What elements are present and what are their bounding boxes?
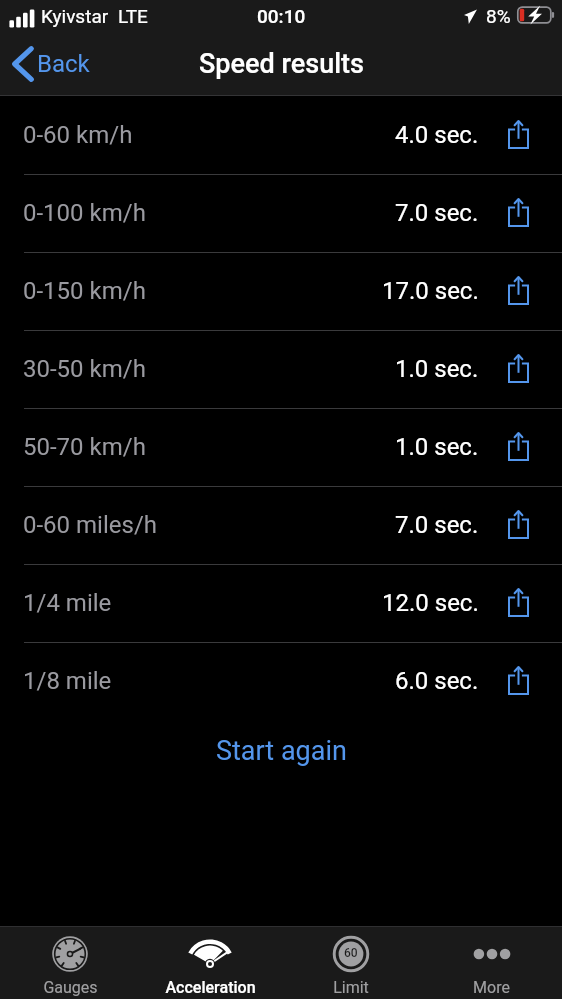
- staticText: 17.0 sec.: [382, 277, 479, 305]
- button[interactable]: 30-50 km/h: [0, 330, 562, 408]
- button[interactable]: Gauges: [0, 926, 140, 999]
- button[interactable]: Share: [502, 115, 532, 155]
- button[interactable]: Share: [502, 271, 532, 311]
- button[interactable]: Start again: [0, 720, 562, 784]
- staticText: 00:10: [257, 5, 306, 27]
- staticText: 12.0 sec.: [382, 589, 479, 617]
- staticText: 1.0 sec.: [395, 355, 479, 383]
- staticText: 60: [344, 946, 358, 960]
- staticText: Gauges: [43, 978, 98, 997]
- staticText: LTE: [118, 5, 148, 27]
- button[interactable]: Share: [502, 661, 532, 701]
- staticText: 6.0 sec.: [395, 667, 479, 695]
- staticText: 4.0 sec.: [395, 121, 479, 149]
- staticText: Speed results: [199, 48, 364, 80]
- staticText: 1/4 mile: [23, 589, 112, 617]
- staticText: 8%: [486, 5, 511, 27]
- staticText: Start again: [216, 735, 347, 767]
- staticText: 0-60 km/h: [23, 121, 133, 149]
- button[interactable]: Share: [502, 505, 532, 545]
- staticText: 1/8 mile: [23, 667, 112, 695]
- button[interactable]: 0-60 km/h: [0, 96, 562, 174]
- button[interactable]: 60: [280, 926, 421, 999]
- staticText: 7.0 sec.: [395, 199, 479, 227]
- button[interactable]: 0-150 km/h: [0, 252, 562, 330]
- staticText: Limit: [333, 978, 369, 997]
- staticText: Kyivstar: [41, 5, 109, 27]
- staticText: Acceleration: [165, 978, 256, 997]
- staticText: More: [473, 978, 510, 997]
- button[interactable]: Share: [502, 193, 532, 233]
- staticText: Back: [37, 50, 90, 78]
- button[interactable]: Back: [12, 46, 90, 82]
- button[interactable]: More: [421, 926, 562, 999]
- staticText: 7.0 sec.: [395, 511, 479, 539]
- button[interactable]: 1/4 mile: [0, 564, 562, 642]
- staticText: 1.0 sec.: [395, 433, 479, 461]
- button[interactable]: Share: [502, 583, 532, 623]
- button[interactable]: 0-60 miles/h: [0, 486, 562, 564]
- button[interactable]: 1/8 mile: [0, 642, 562, 720]
- staticText: 50-70 km/h: [23, 433, 146, 461]
- button[interactable]: Share: [502, 427, 532, 467]
- staticText: 30-50 km/h: [23, 355, 146, 383]
- button[interactable]: Acceleration: [140, 926, 280, 999]
- staticText: 0-100 km/h: [23, 199, 146, 227]
- staticText: 0-150 km/h: [23, 277, 146, 305]
- button[interactable]: 0-100 km/h: [0, 174, 562, 252]
- staticText: 0-60 miles/h: [23, 511, 158, 539]
- button[interactable]: Share: [502, 349, 532, 389]
- button[interactable]: 50-70 km/h: [0, 408, 562, 486]
